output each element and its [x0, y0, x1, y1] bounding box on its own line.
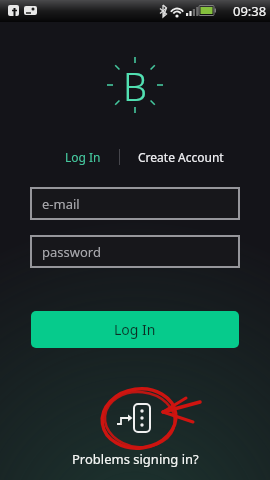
staticText: Create Account — [138, 149, 224, 165]
staticText: 09:38 — [233, 2, 267, 20]
button[interactable]: Problems signing in? — [0, 450, 270, 468]
button[interactable]: Log In — [31, 311, 239, 348]
staticText: B — [123, 60, 147, 112]
button[interactable] — [95, 380, 205, 455]
staticText: Problems signing in? — [72, 450, 199, 468]
staticText: Log In — [114, 320, 156, 339]
button[interactable]: Log In — [57, 145, 109, 169]
button[interactable]: e-mail — [32, 189, 238, 218]
staticText: password — [42, 243, 101, 261]
button[interactable]: Create Account — [130, 145, 232, 169]
button[interactable]: password — [32, 237, 238, 266]
staticText: e-mail — [42, 195, 80, 213]
staticText: Log In — [65, 149, 101, 165]
